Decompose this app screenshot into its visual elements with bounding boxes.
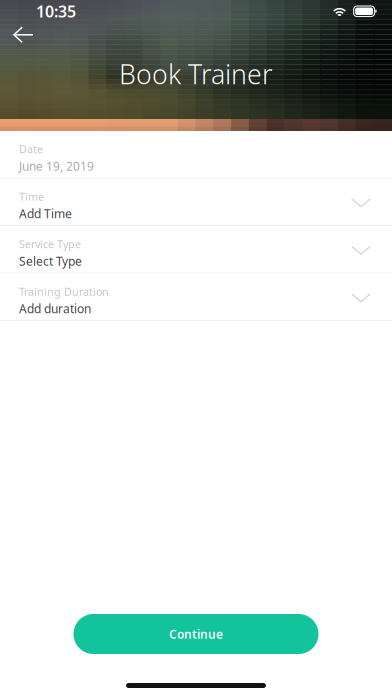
staticText: 10:35 (36, 1, 76, 22)
button[interactable]: Continue (73, 614, 318, 654)
staticText: June 19, 2019 (19, 158, 94, 174)
button[interactable]: Date (0, 131, 392, 177)
staticText: Continue (169, 626, 223, 642)
button[interactable]: Back (0, 21, 46, 48)
button[interactable]: Training Duration (0, 273, 392, 320)
staticText: Service Type (19, 237, 81, 251)
staticText: Add Time (19, 206, 72, 222)
button[interactable]: Time (0, 178, 392, 225)
staticText: Book Trainer (119, 56, 273, 92)
staticText: Time (19, 189, 44, 204)
staticText: Training Duration (19, 284, 109, 299)
button[interactable]: Service Type (0, 226, 392, 272)
staticText: Select Type (19, 253, 82, 269)
staticText: Add duration (19, 301, 91, 317)
staticText: Date (19, 142, 43, 156)
